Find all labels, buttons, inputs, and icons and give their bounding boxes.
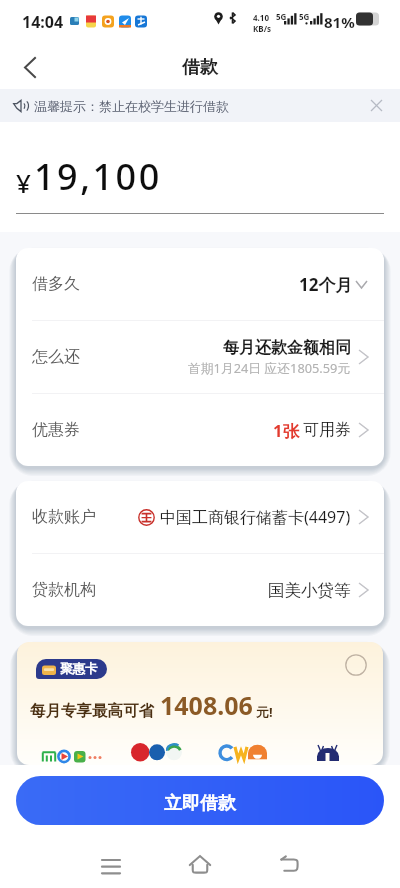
staticText: 可用券 <box>303 420 351 440</box>
button[interactable]: Back <box>265 846 313 882</box>
button[interactable]: Back <box>0 45 58 89</box>
button[interactable]: 立即借款 <box>16 776 384 825</box>
button[interactable]: 借多久 <box>16 248 384 320</box>
button[interactable]: Select coupon <box>345 654 367 676</box>
staticText: 19,100 <box>34 152 162 201</box>
button[interactable]: 贷款机构 <box>16 554 384 626</box>
staticText: 81% <box>324 12 355 32</box>
staticText: 中国工商银行储蓄卡(4497) <box>160 506 351 528</box>
staticText: 5G <box>299 11 310 22</box>
button[interactable]: 收款账户 <box>16 481 384 553</box>
staticText: 立即借款 <box>164 792 236 815</box>
button[interactable]: 怎么还 <box>16 321 384 393</box>
button[interactable]: 优惠券 <box>16 394 384 466</box>
staticText: 贷款机构 <box>32 580 96 600</box>
staticText: 优惠券 <box>32 420 80 440</box>
button[interactable]: Close notice <box>363 92 390 119</box>
staticText: 国美小贷等 <box>268 580 351 601</box>
staticText: 温馨提示：禁止在校学生进行借款 <box>34 98 229 114</box>
staticText: 借多久 <box>32 274 80 294</box>
staticText: 借款 <box>182 56 218 79</box>
staticText: 1张 <box>273 419 299 442</box>
staticText: 怎么还 <box>32 347 80 367</box>
button[interactable]: Recent apps <box>87 846 135 882</box>
staticText: 5G <box>276 11 287 22</box>
button[interactable]: 聚惠卡 <box>17 642 383 765</box>
staticText: 14:04 <box>22 11 64 33</box>
staticText: 每月还款金额相同 <box>223 338 351 358</box>
staticText: KB/s <box>253 23 271 34</box>
staticText: 元! <box>256 703 273 721</box>
staticText: 12个月 <box>299 273 353 296</box>
staticText: 聚惠卡 <box>60 661 98 677</box>
staticText: 收款账户 <box>32 507 96 527</box>
staticText: 1408.06 <box>160 688 253 722</box>
staticText: 首期1月24日 应还1805.59元 <box>188 359 351 376</box>
staticText: 4.10 <box>253 12 269 23</box>
staticText: 每月专享最高可省 <box>30 701 154 721</box>
staticText: ¥ <box>16 165 31 200</box>
button[interactable]: Home <box>176 846 224 882</box>
